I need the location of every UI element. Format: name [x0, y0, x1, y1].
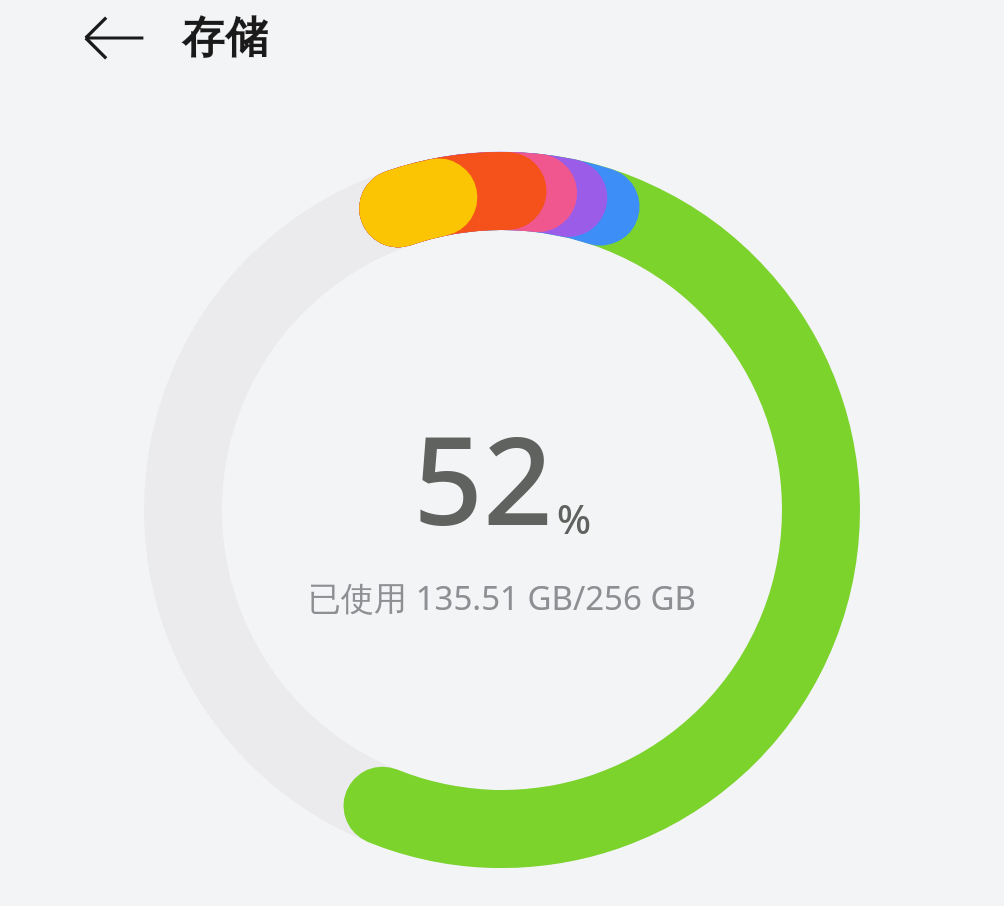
staticText: 已使用 135.51 GB/256 GB — [308, 575, 696, 620]
staticText: 52 — [413, 395, 553, 561]
button[interactable]: Back — [78, 3, 148, 73]
staticText: % — [557, 491, 592, 545]
staticText: 存储 — [182, 11, 268, 65]
